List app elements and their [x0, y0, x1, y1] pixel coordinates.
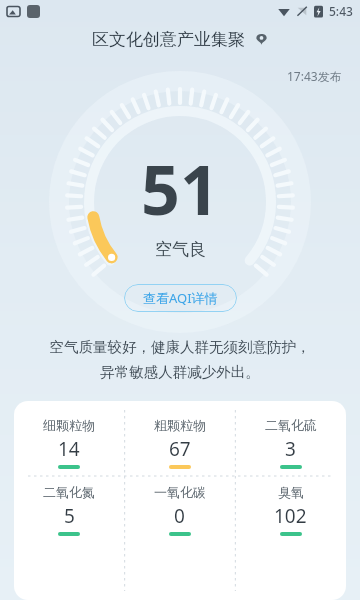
- staticText: 3: [285, 436, 296, 462]
- staticText: 臭氧: [278, 484, 304, 500]
- button[interactable]: 细颗粒物: [14, 410, 124, 476]
- staticText: 区文化创意产业集聚: [92, 29, 245, 50]
- staticText: 空气良: [155, 239, 206, 260]
- button[interactable]: 臭氧: [235, 477, 346, 543]
- staticText: 二氧化氮: [43, 484, 95, 500]
- button[interactable]: 查看AQI详情: [124, 284, 237, 312]
- button[interactable]: 粗颗粒物: [124, 410, 235, 476]
- staticText: 5: [64, 503, 75, 529]
- staticText: 0: [174, 503, 185, 529]
- staticText: 一氧化碳: [154, 484, 206, 500]
- staticText: 17:43发布: [287, 68, 342, 84]
- staticText: 空气质量较好，健康人群无须刻意防护，异常敏感人群减少外出。: [44, 338, 316, 381]
- staticText: 14: [58, 436, 80, 462]
- button[interactable]: 细颗粒物: [14, 401, 346, 600]
- button[interactable]: 二氧化氮: [14, 477, 124, 543]
- button[interactable]: 一氧化碳: [124, 477, 235, 543]
- staticText: 5:43: [329, 3, 353, 19]
- button[interactable]: Location: [254, 32, 269, 47]
- staticText: 查看AQI详情: [143, 289, 218, 307]
- staticText: 粗颗粒物: [154, 417, 206, 433]
- staticText: 二氧化硫: [265, 417, 317, 433]
- button[interactable]: 二氧化硫: [235, 410, 346, 476]
- staticText: 102: [274, 503, 307, 529]
- staticText: 细颗粒物: [43, 417, 95, 433]
- staticText: 67: [169, 436, 191, 462]
- staticText: 51: [141, 142, 219, 235]
